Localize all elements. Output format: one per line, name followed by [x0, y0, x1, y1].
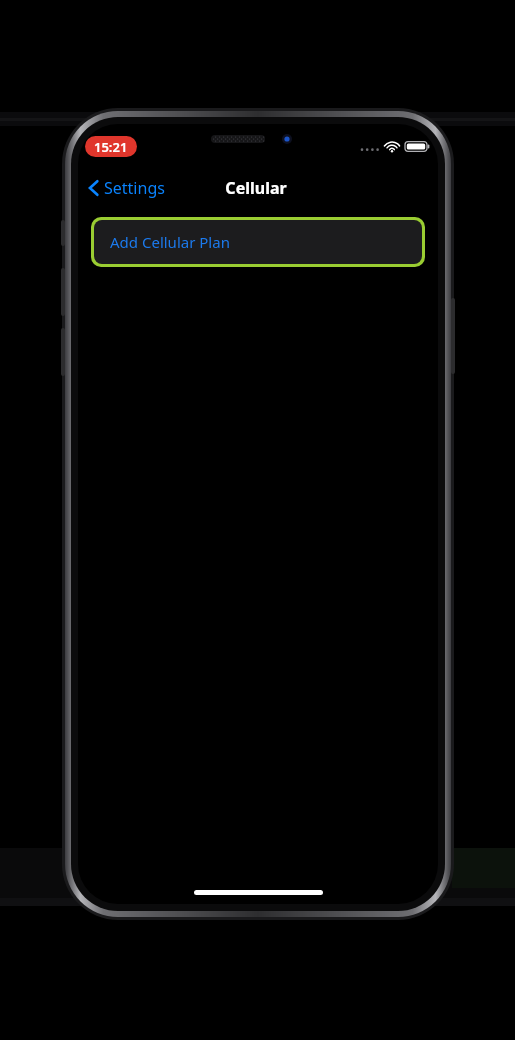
staticText: Cellular	[225, 177, 287, 199]
other: Home indicator	[194, 890, 323, 895]
button[interactable]: Settings	[86, 173, 167, 203]
staticText: Settings	[104, 177, 165, 199]
staticText: Add Cellular Plan	[110, 232, 230, 252]
staticText: 15:21	[94, 138, 128, 156]
button[interactable]: Add Cellular Plan	[94, 220, 422, 264]
